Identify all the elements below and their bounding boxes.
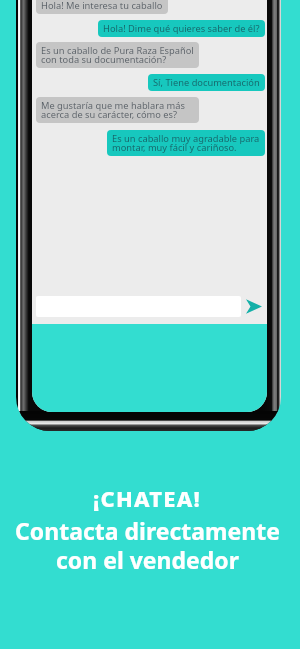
staticText: Es un caballo de Pura Raza Español con t…	[41, 44, 194, 66]
staticText: ¡CHATEA!	[93, 483, 201, 513]
staticText: Es un caballo muy agradable para montar,…	[112, 132, 260, 154]
staticText: Hola! Me interesa tu caballo	[41, 0, 163, 12]
staticText: Sí, Tiene documentación	[153, 76, 260, 89]
button[interactable]: Es un caballo de Pura Raza Español con t…	[36, 42, 199, 68]
button[interactable]: Es un caballo muy agradable para montar,…	[107, 130, 265, 156]
button[interactable]: Hola! Dime qué quieres saber de él?	[98, 20, 265, 37]
button[interactable]: Me gustaría que me hablara más acerca de…	[36, 97, 199, 123]
staticText: Hola! Dime qué quieres saber de él?	[103, 22, 260, 35]
staticText: Contacta directamente con el vendedor	[15, 515, 280, 576]
staticText: Me gustaría que me hablara más acerca de…	[41, 99, 185, 121]
button[interactable]: Hola! Me interesa tu caballo	[36, 0, 168, 14]
button[interactable]: Sí, Tiene documentación	[148, 74, 265, 91]
button[interactable]: Send	[242, 295, 266, 319]
